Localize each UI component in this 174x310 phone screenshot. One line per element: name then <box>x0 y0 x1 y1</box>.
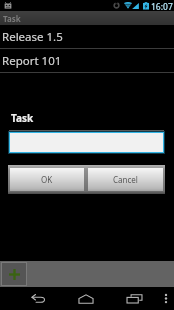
button[interactable]: Add task <box>2 263 26 285</box>
staticText: Report 101 <box>2 53 62 69</box>
button[interactable]: Recent apps <box>110 287 158 310</box>
staticText: Task <box>3 13 21 24</box>
staticText: Task <box>11 111 34 125</box>
button[interactable]: Report 101 <box>0 49 174 73</box>
button[interactable]: Home <box>62 287 110 310</box>
staticText: OK <box>41 174 53 185</box>
button[interactable]: Release 1.5 <box>0 25 174 49</box>
staticText: Cancel <box>113 174 138 185</box>
button[interactable]: OK <box>10 168 84 191</box>
button[interactable]: More options <box>158 287 174 310</box>
button[interactable]: Back <box>7 287 69 310</box>
staticText: 16:07 <box>151 1 173 12</box>
staticText: Release 1.5 <box>2 29 63 45</box>
button[interactable]: Cancel <box>88 168 163 191</box>
